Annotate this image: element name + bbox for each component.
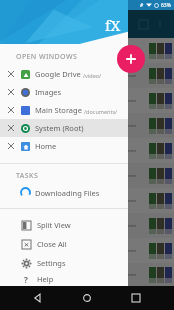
button[interactable]: Close Images	[5, 86, 17, 98]
button[interactable]: root	[0, 88, 174, 113]
button[interactable]: Close Main Storage	[5, 104, 17, 116]
staticText: root	[128, 198, 136, 203]
button[interactable]: Downloading Files	[0, 184, 128, 201]
button[interactable]: Close Images	[0, 83, 128, 101]
staticText: OPEN WINDOWS	[16, 52, 78, 62]
staticText: /video/	[83, 72, 102, 79]
button[interactable]: root	[0, 163, 174, 188]
button[interactable]: root	[0, 238, 174, 263]
button[interactable]: root	[0, 213, 174, 238]
staticText: Home	[35, 141, 57, 151]
staticText: Google Drive	[35, 69, 81, 79]
staticText: Help	[37, 274, 54, 284]
staticText: root	[128, 272, 136, 277]
button[interactable]: Split View	[0, 215, 128, 234]
staticText: 63%	[161, 2, 171, 9]
button[interactable]: root	[0, 38, 174, 63]
staticText: root	[128, 98, 136, 103]
button[interactable]: root	[0, 113, 174, 138]
button[interactable]: ?	[0, 272, 128, 286]
staticText: System (Root)	[35, 123, 84, 133]
staticText: ?	[24, 274, 28, 284]
staticText: root	[128, 123, 136, 128]
staticText: root	[128, 73, 136, 78]
button[interactable]: Add	[117, 45, 145, 73]
staticText: root	[128, 173, 136, 178]
staticText: Images	[35, 87, 62, 97]
button[interactable]: Close System (Root)	[0, 119, 128, 137]
staticText: TASKS	[16, 171, 39, 181]
button[interactable]: Close Google Drive	[0, 65, 128, 83]
staticText: Downloading Files	[35, 188, 100, 198]
button[interactable]: Close Main Storage	[0, 101, 128, 119]
button[interactable]: Close Google Drive	[5, 68, 17, 80]
button[interactable]: root	[0, 63, 174, 88]
button[interactable]: Back	[27, 287, 49, 309]
button[interactable]: Settings	[0, 253, 128, 272]
staticText: Main Storage	[35, 105, 82, 115]
button[interactable]: Close Home	[0, 137, 128, 155]
button[interactable]: root	[0, 188, 174, 213]
staticText: Settings	[37, 258, 66, 268]
staticText: /documents/	[84, 108, 118, 115]
staticText: root	[128, 223, 136, 228]
staticText: root	[128, 148, 136, 153]
staticText: Close All	[37, 239, 67, 249]
button[interactable]: Recents	[125, 287, 147, 309]
button[interactable]: Home	[76, 287, 98, 309]
staticText: Split View	[37, 220, 71, 230]
button[interactable]: Close System (Root)	[5, 122, 17, 134]
button[interactable]: Close All	[0, 234, 128, 253]
staticText: #	[140, 2, 144, 9]
button[interactable]: Close Home	[5, 140, 17, 152]
staticText: root	[128, 248, 136, 253]
button[interactable]: root	[0, 138, 174, 163]
staticText: fX	[105, 15, 121, 35]
button[interactable]: root	[0, 263, 174, 286]
button[interactable]: New window	[134, 15, 152, 33]
